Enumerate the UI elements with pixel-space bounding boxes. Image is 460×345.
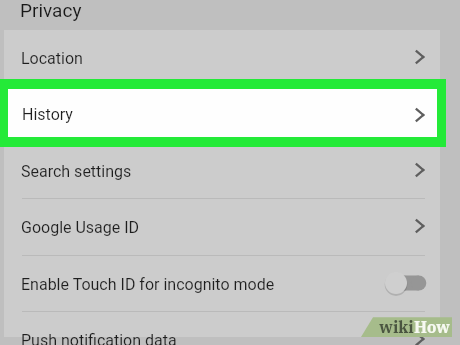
button[interactable]: Enable Touch ID for incognito mode (4, 255, 440, 311)
button[interactable]: History (4, 86, 440, 142)
button[interactable]: Push notification data (4, 311, 440, 345)
button[interactable]: Privacy (0, 0, 452, 30)
staticText: Google Usage ID (21, 218, 140, 237)
other: Search settings (408, 158, 432, 182)
button[interactable]: History (8, 89, 437, 137)
other: Push notification data (408, 327, 432, 345)
staticText: Push notification data (21, 331, 177, 345)
staticText: wiki (379, 317, 414, 338)
other: Toggle Enable Touch ID for incognito mod… (382, 268, 432, 298)
staticText: History (21, 106, 72, 125)
other: History (408, 102, 432, 126)
other: History (408, 103, 432, 127)
button[interactable]: Search settings (4, 142, 440, 198)
button[interactable]: Location (4, 29, 440, 85)
staticText: How (414, 317, 450, 338)
other: Location (408, 45, 432, 69)
staticText: History (22, 105, 73, 124)
staticText: Enable Touch ID for incognito mode (21, 275, 275, 294)
button[interactable]: Google Usage ID (4, 198, 440, 254)
other: Google Usage ID (408, 214, 432, 238)
staticText: Location (21, 49, 83, 68)
staticText: Search settings (21, 162, 132, 181)
staticText: Privacy (20, 0, 82, 21)
